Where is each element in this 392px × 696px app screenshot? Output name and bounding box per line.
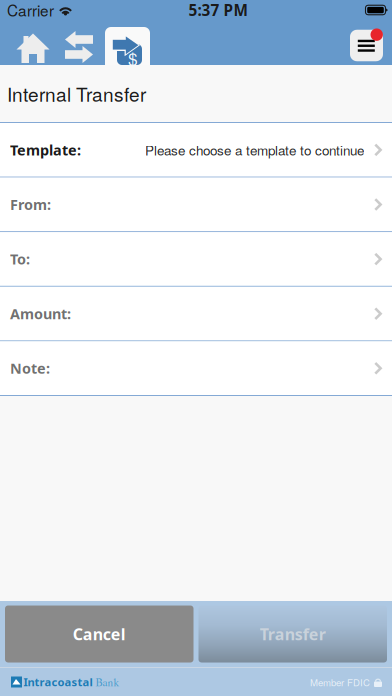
button[interactable]: Menu bbox=[346, 20, 387, 65]
staticText: Member FDIC bbox=[310, 675, 370, 689]
staticText: Carrier bbox=[7, 0, 54, 21]
button[interactable]: From: bbox=[0, 178, 392, 231]
button[interactable]: Template: bbox=[0, 123, 392, 177]
staticText: Internal Transfer bbox=[7, 80, 146, 107]
button[interactable]: Home bbox=[10, 20, 56, 65]
staticText: Cancel bbox=[73, 623, 126, 645]
staticText: Transfer bbox=[260, 623, 326, 645]
staticText: Note: bbox=[10, 358, 50, 378]
button[interactable]: Transfer bbox=[198, 605, 387, 662]
button[interactable]: Cancel bbox=[5, 605, 193, 662]
staticText: Amount: bbox=[10, 304, 71, 323]
staticText: From: bbox=[10, 195, 51, 214]
button[interactable]: Amount: bbox=[0, 287, 392, 340]
staticText: Template: bbox=[10, 140, 81, 160]
staticText: Bank bbox=[92, 674, 119, 689]
staticText: 5:37 PM bbox=[188, 0, 247, 20]
button[interactable]: To: bbox=[0, 232, 392, 286]
button[interactable]: Transfers bbox=[58, 20, 100, 65]
button[interactable]: Internal Transfer bbox=[105, 23, 150, 65]
staticText: Intracoastal bbox=[23, 674, 92, 690]
staticText: Please choose a template to continue bbox=[145, 140, 364, 159]
button[interactable]: Note: bbox=[0, 341, 392, 395]
staticText: $ bbox=[128, 45, 138, 70]
staticText: To: bbox=[10, 249, 30, 269]
